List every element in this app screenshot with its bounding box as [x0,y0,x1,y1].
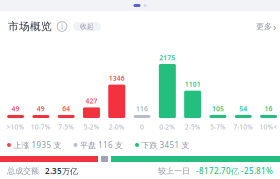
staticText: 2175 [159,53,175,62]
staticText: 2.35万亿 [45,166,78,176]
staticText: 116 [136,104,148,113]
staticText: 49 [37,104,45,113]
staticText: 1346 [109,74,125,83]
staticText: 105 [212,104,224,113]
staticText: 64 [62,104,70,113]
button[interactable]: 收起 [73,22,101,31]
staticText: 上涨 1935 支 [13,140,61,150]
staticText: 5-7% [210,123,226,131]
staticText: 427 [85,96,97,105]
staticText: 10-7% [31,123,51,131]
staticText: 较上一日 [158,166,190,176]
staticText: 5-2% [83,123,99,131]
staticText: i [61,21,63,32]
staticText: 49 [11,104,19,113]
staticText: 7-5% [58,123,74,131]
staticText: 收起 [80,22,94,31]
staticText: 2-5% [185,123,201,131]
staticText: 16 [265,104,273,113]
staticText: 54 [239,104,247,113]
staticText: 0-2% [159,123,175,131]
staticText: 下跌 3451 支 [141,140,189,150]
staticText: 2-0% [109,123,125,131]
staticText: 0 [140,123,144,131]
staticText: 7-10% [233,123,253,131]
staticText: › [273,19,276,34]
staticText: -8172.70亿 -25.81% [196,166,273,176]
staticText: 市场概览 [8,20,52,33]
staticText: 总成交额 [7,166,39,176]
staticText: 10%< [260,123,278,131]
staticText: 1101 [185,80,201,89]
staticText: 平盘 116 支 [80,140,123,150]
staticText: >10% [6,123,24,131]
button[interactable]: 更多 [256,19,276,34]
staticText: 更多 [256,22,272,31]
